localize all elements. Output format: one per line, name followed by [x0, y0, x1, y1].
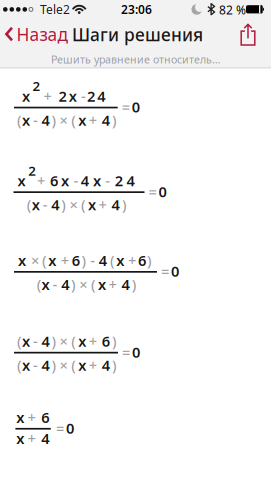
staticText: - — [81, 86, 86, 106]
staticText: 4 — [102, 110, 110, 130]
staticText: x — [22, 331, 30, 351]
staticText: + — [27, 429, 35, 448]
staticText: - — [53, 274, 58, 294]
staticText: ) — [51, 331, 56, 351]
staticText: 0 — [66, 418, 74, 438]
staticText: × — [79, 274, 87, 294]
staticText: x — [48, 251, 56, 270]
staticText: 23:06 — [121, 1, 152, 17]
staticText: - — [105, 171, 110, 190]
staticText: 4 — [41, 110, 49, 130]
staticText: ) — [112, 110, 117, 130]
staticText: - — [33, 110, 38, 130]
staticText: 4 — [97, 86, 105, 106]
staticText: 4 — [61, 274, 69, 294]
button[interactable]: Назад — [5, 23, 68, 46]
staticText: 4 — [121, 274, 129, 294]
staticText: 4 — [51, 195, 59, 214]
staticText: + — [89, 355, 97, 375]
staticText: x — [116, 251, 124, 270]
staticText: x — [32, 195, 40, 214]
staticText: 4 — [81, 171, 89, 190]
staticText: ) — [112, 355, 117, 375]
staticText: ) — [61, 195, 66, 214]
staticText: - — [33, 355, 38, 375]
staticText: 6 — [72, 251, 80, 270]
staticText: ( — [42, 251, 47, 270]
staticText: ( — [27, 195, 32, 214]
staticText: x — [16, 407, 24, 427]
staticText: + — [108, 274, 116, 294]
staticText: ) — [132, 274, 137, 294]
staticText: 2 — [32, 77, 40, 95]
staticText: ( — [91, 274, 96, 294]
staticText: - — [73, 171, 78, 190]
staticText: x — [22, 355, 30, 375]
staticText: ( — [17, 331, 22, 351]
staticText: x — [18, 251, 26, 270]
staticText: x — [69, 86, 77, 106]
staticText: 4 — [127, 171, 135, 190]
staticText: 4 — [41, 429, 49, 448]
staticText: 0 — [132, 97, 140, 117]
staticText: ( — [17, 355, 22, 375]
staticText: Решить уравнение относитель… — [51, 52, 220, 66]
staticText: 6 — [138, 251, 146, 270]
staticText: 4 — [41, 355, 49, 375]
staticText: × — [60, 110, 68, 130]
staticText: + — [37, 171, 45, 190]
staticText: ) — [122, 195, 127, 214]
staticText: x — [78, 355, 86, 375]
staticText: ( — [81, 195, 86, 214]
staticText: Шаги решения — [72, 23, 203, 46]
staticText: = — [122, 97, 130, 117]
staticText: 4 — [99, 251, 107, 270]
staticText: + — [128, 251, 136, 270]
staticText: = — [56, 418, 64, 438]
staticText: 2 — [115, 171, 123, 190]
staticText: + — [99, 195, 107, 214]
staticText: ) — [147, 251, 152, 270]
staticText: × — [69, 195, 77, 214]
staticText: Назад — [16, 23, 68, 46]
staticText: ( — [71, 110, 76, 130]
staticText: x — [42, 274, 50, 294]
staticText: - — [90, 251, 95, 270]
staticText: x — [93, 171, 101, 190]
staticText: - — [33, 331, 38, 351]
staticText: + — [27, 407, 35, 427]
staticText: + — [61, 251, 69, 270]
staticText: x — [88, 195, 96, 214]
staticText: ( — [37, 274, 42, 294]
staticText: ( — [17, 110, 22, 130]
staticText: = — [122, 342, 130, 362]
staticText: x — [17, 171, 25, 190]
staticText: ( — [71, 331, 76, 351]
staticText: ) — [71, 274, 76, 294]
staticText: = — [161, 261, 169, 281]
staticText: 6 — [102, 331, 110, 351]
staticText: x — [16, 429, 24, 448]
staticText: 82 % — [219, 2, 246, 18]
staticText: ) — [51, 355, 56, 375]
staticText: 0 — [158, 182, 166, 201]
staticText: 4 — [102, 355, 110, 375]
staticText: x — [22, 86, 30, 106]
staticText: x — [61, 171, 69, 190]
staticText: - — [43, 195, 48, 214]
staticText: 2 — [59, 86, 67, 106]
staticText: × — [60, 331, 68, 351]
staticText: = — [148, 182, 156, 201]
staticText: 6 — [41, 407, 49, 427]
button[interactable]: Share — [235, 19, 260, 51]
staticText: x — [78, 110, 86, 130]
staticText: + — [44, 86, 52, 106]
staticText: 0 — [132, 342, 140, 362]
staticText: Tele2 — [40, 1, 70, 17]
staticText: 4 — [41, 331, 49, 351]
staticText: 2 — [28, 162, 36, 179]
staticText: ( — [110, 251, 115, 270]
staticText: ) — [81, 251, 86, 270]
staticText: x — [78, 331, 86, 351]
staticText: ) — [51, 110, 56, 130]
